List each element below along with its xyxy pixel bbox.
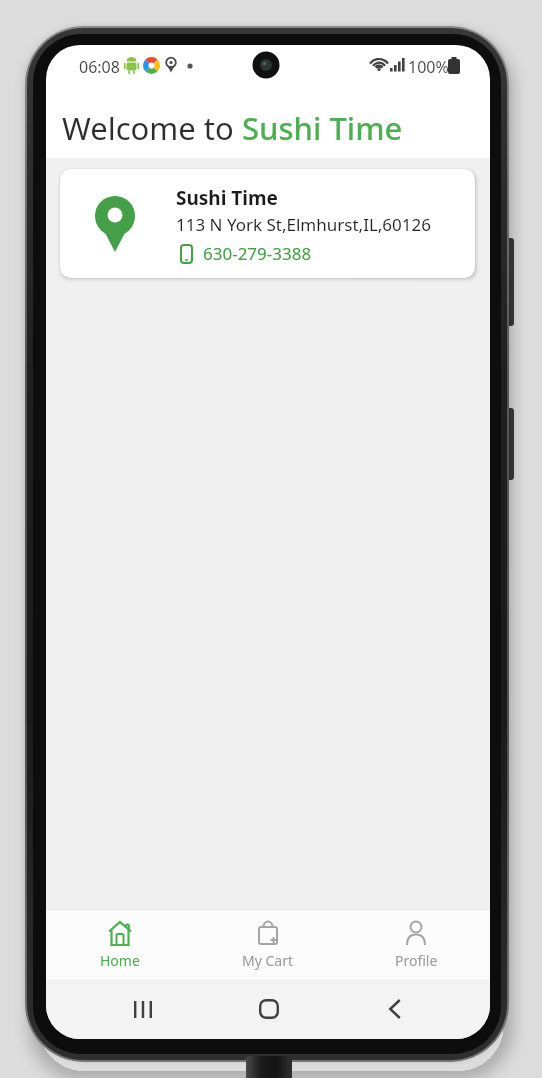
staticText: Profile <box>395 951 438 970</box>
button[interactable]: My Cart <box>194 909 342 979</box>
button[interactable]: Profile <box>342 909 490 979</box>
staticText: My Cart <box>242 951 294 970</box>
button[interactable]: 630-279-3388 <box>180 242 312 265</box>
staticText: 100% <box>408 56 449 78</box>
staticText: Sushi Time <box>242 107 403 149</box>
button[interactable] <box>134 1001 152 1018</box>
staticText: 630-279-3388 <box>203 242 312 265</box>
button[interactable]: Home <box>46 909 194 979</box>
button[interactable] <box>389 1000 401 1018</box>
button[interactable]: Sushi Time <box>60 169 475 278</box>
staticText: Welcome to <box>62 107 242 149</box>
staticText: Sushi Time <box>176 185 278 211</box>
staticText: 113 N York St,Elmhurst,IL,60126 <box>176 213 431 236</box>
staticText: Home <box>100 951 140 970</box>
button[interactable] <box>259 999 279 1019</box>
staticText: 06:08 <box>79 56 120 78</box>
